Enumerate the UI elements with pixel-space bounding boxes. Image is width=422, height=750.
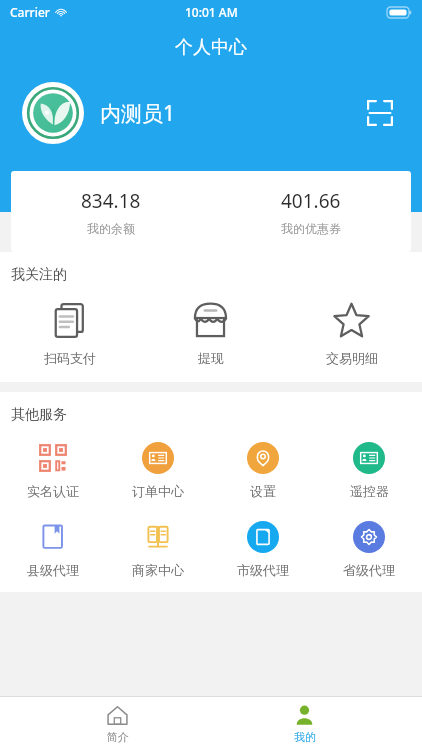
button[interactable]: Scan QR code xyxy=(360,93,400,133)
staticText: 其他服务 xyxy=(11,406,67,424)
button[interactable]: 交易明细 xyxy=(281,300,422,366)
staticText: 市级代理 xyxy=(237,562,289,578)
staticText: 我的优惠券 xyxy=(281,221,341,236)
staticText: 省级代理 xyxy=(343,562,395,578)
button[interactable]: 商家中心 xyxy=(105,521,210,578)
button[interactable]: 简介 xyxy=(59,697,176,750)
staticText: 县级代理 xyxy=(27,562,79,578)
staticText: 834.18 xyxy=(81,188,141,214)
staticText: 订单中心 xyxy=(132,483,184,499)
staticText: 401.66 xyxy=(281,188,341,214)
staticText: 个人中心 xyxy=(175,36,247,59)
staticText: 交易明细 xyxy=(326,350,378,366)
staticText: 10:01 AM xyxy=(185,4,238,20)
button[interactable]: 遥控器 xyxy=(316,442,422,499)
staticText: 实名认证 xyxy=(27,483,79,499)
button[interactable]: 提现 xyxy=(140,300,281,366)
staticText: 简介 xyxy=(107,730,129,744)
button[interactable]: 834.18 xyxy=(11,171,211,252)
staticText: 设置 xyxy=(250,483,276,499)
staticText: 提现 xyxy=(198,350,224,366)
staticText: 遥控器 xyxy=(350,483,389,499)
button[interactable]: 我的 xyxy=(246,697,363,750)
button[interactable]: 县级代理 xyxy=(0,521,105,578)
button[interactable]: 401.66 xyxy=(211,171,411,252)
staticText: 商家中心 xyxy=(132,562,184,578)
staticText: 扫码支付 xyxy=(44,350,96,366)
staticText: Carrier xyxy=(10,4,50,20)
button[interactable]: 设置 xyxy=(210,442,316,499)
staticText: 我的 xyxy=(294,730,316,744)
button[interactable] xyxy=(22,82,84,144)
staticText: 我关注的 xyxy=(11,266,67,284)
button[interactable]: 订单中心 xyxy=(105,442,210,499)
button[interactable]: 内测员1 xyxy=(100,99,176,128)
button[interactable]: 实名认证 xyxy=(0,442,105,499)
staticText: 我的余额 xyxy=(87,221,135,236)
button[interactable]: 市级代理 xyxy=(210,521,316,578)
button[interactable]: 省级代理 xyxy=(316,521,422,578)
button[interactable]: 扫码支付 xyxy=(0,300,140,366)
